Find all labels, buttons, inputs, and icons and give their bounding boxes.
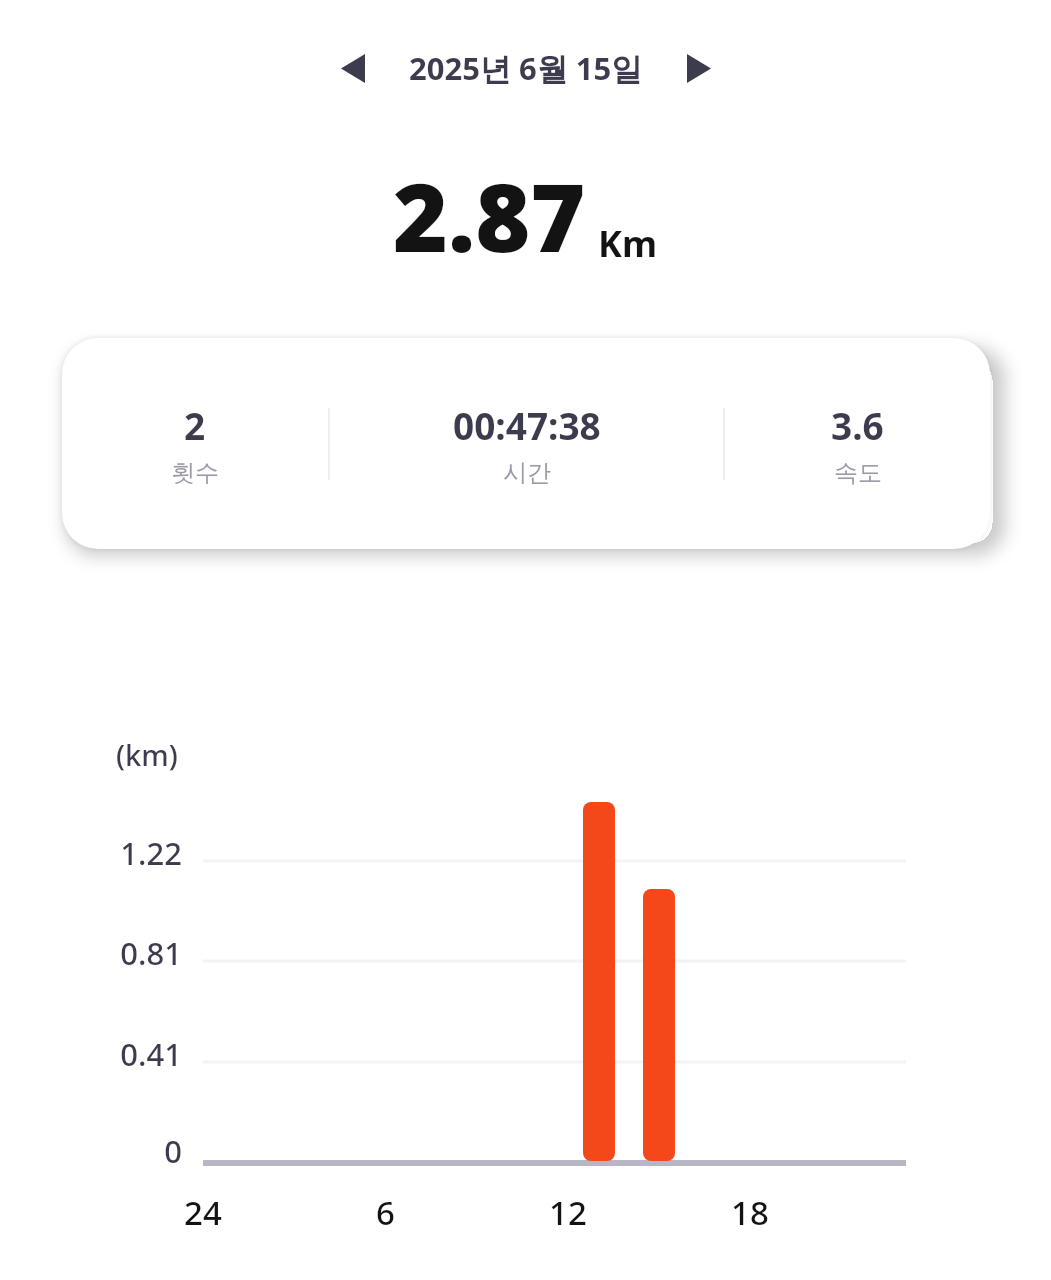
staticText: 0 xyxy=(164,1130,182,1172)
staticText: 2.87 xyxy=(393,152,586,280)
button[interactable]: 2 xyxy=(62,338,328,549)
staticText: 속도 xyxy=(834,458,882,488)
button[interactable]: 00:47:38 xyxy=(330,338,723,549)
staticText: 00:47:38 xyxy=(453,400,601,450)
staticText: 3.6 xyxy=(831,400,884,450)
staticText: 12 xyxy=(549,1190,587,1235)
staticText: 횟수 xyxy=(171,458,219,488)
button[interactable]: Next day xyxy=(675,44,723,92)
staticText: Km xyxy=(598,219,658,268)
staticText: 18 xyxy=(731,1190,769,1235)
button[interactable]: Previous day xyxy=(329,44,377,92)
staticText: 0.81 xyxy=(120,932,182,974)
staticText: 2025년 6월 15일 xyxy=(409,47,643,89)
staticText: 6 xyxy=(376,1190,395,1235)
staticText: 2 xyxy=(184,400,206,450)
staticText: 시간 xyxy=(503,458,551,488)
staticText: 1.22 xyxy=(120,832,182,874)
staticText: 0.41 xyxy=(120,1033,182,1075)
button[interactable]: 2 xyxy=(62,338,990,549)
staticText: 24 xyxy=(184,1190,222,1235)
button[interactable]: 3.6 xyxy=(725,338,990,549)
staticText: (km) xyxy=(116,735,178,774)
